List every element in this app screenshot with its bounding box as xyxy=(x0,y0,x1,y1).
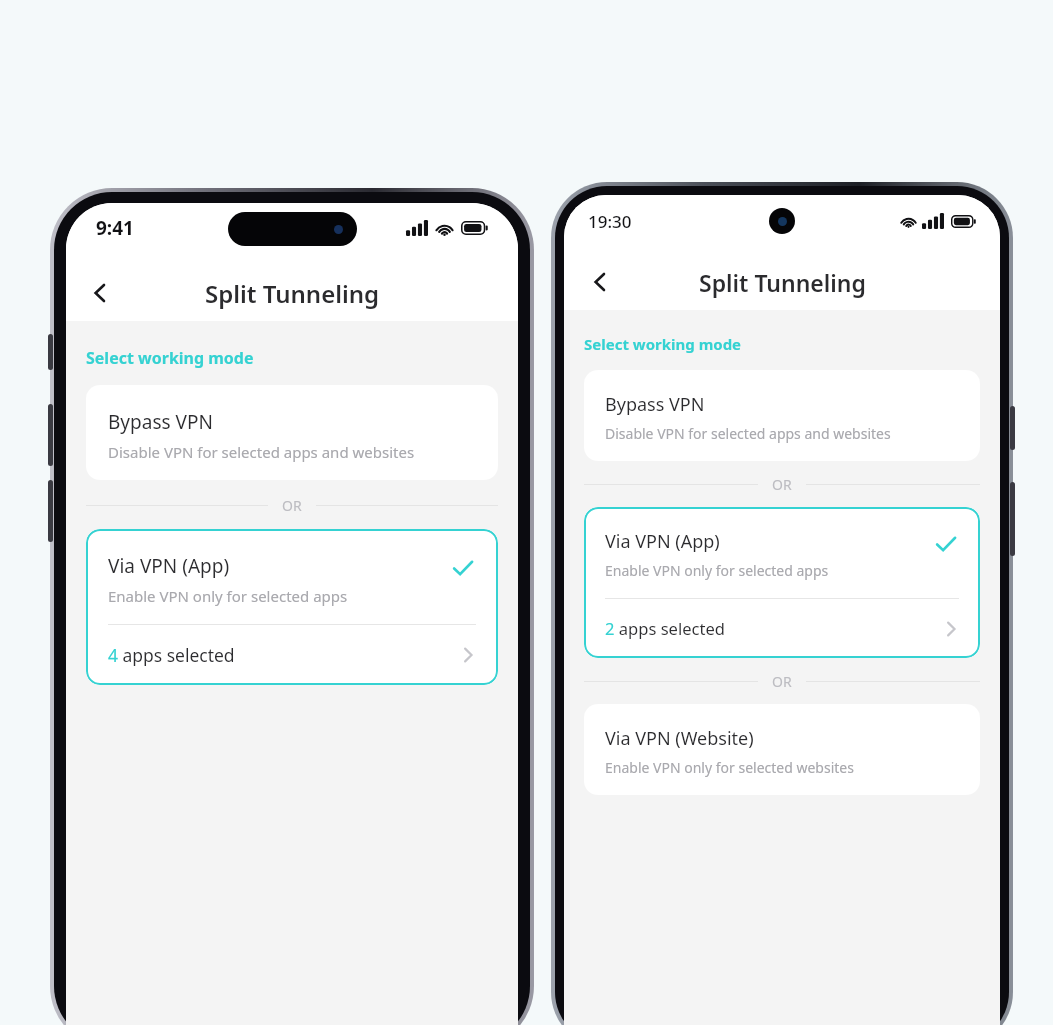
staticText: Via VPN (Website) xyxy=(605,726,754,751)
button[interactable]: Back xyxy=(578,260,622,304)
staticText: Split Tunneling xyxy=(699,267,866,298)
staticText: 9:41 xyxy=(96,215,134,241)
button[interactable]: 4 apps selected xyxy=(86,625,498,685)
button[interactable]: Via VPN (Website) xyxy=(584,704,980,795)
staticText: Disable VPN for selected apps and websit… xyxy=(605,424,891,443)
staticText: OR xyxy=(772,672,792,691)
staticText: Via VPN (App) xyxy=(108,553,230,579)
staticText: 19:30 xyxy=(588,210,632,233)
staticText: Disable VPN for selected apps and websit… xyxy=(108,442,415,462)
staticText: Bypass VPN xyxy=(605,392,705,417)
button[interactable]: Bypass VPN xyxy=(584,370,980,461)
staticText: Split Tunneling xyxy=(205,277,380,310)
staticText: Select working mode xyxy=(86,347,254,369)
button[interactable]: Via VPN (App) xyxy=(86,529,498,685)
staticText: OR xyxy=(772,475,792,494)
staticText: Enable VPN only for selected apps xyxy=(605,561,829,580)
staticText: Enable VPN only for selected websites xyxy=(605,758,854,777)
staticText: Via VPN (App) xyxy=(605,529,720,554)
button[interactable]: 2 apps selected xyxy=(584,599,980,658)
staticText: Bypass VPN xyxy=(108,409,213,435)
staticText: Select working mode xyxy=(584,334,742,354)
button[interactable]: Back xyxy=(78,271,122,315)
staticText: Enable VPN only for selected apps xyxy=(108,586,348,606)
button[interactable]: Via VPN (App) xyxy=(584,507,980,658)
staticText: 4 apps selected xyxy=(108,643,235,667)
staticText: OR xyxy=(282,496,302,515)
button[interactable]: Bypass VPN xyxy=(86,385,498,480)
staticText: 2 apps selected xyxy=(605,617,725,640)
